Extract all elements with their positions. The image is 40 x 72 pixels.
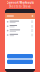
button[interactable]: Upload to Strava <box>7 60 33 64</box>
staticText: Sheets to Strava <box>9 5 31 8</box>
staticText: Convert Workouts <box>6 1 33 4</box>
button[interactable]: Workout row <box>5 28 35 33</box>
button[interactable]: Convert <box>7 54 33 58</box>
button[interactable]: Workout row <box>5 33 35 37</box>
button[interactable]: Workout row <box>5 24 35 28</box>
button[interactable]: Workout row <box>5 20 35 24</box>
